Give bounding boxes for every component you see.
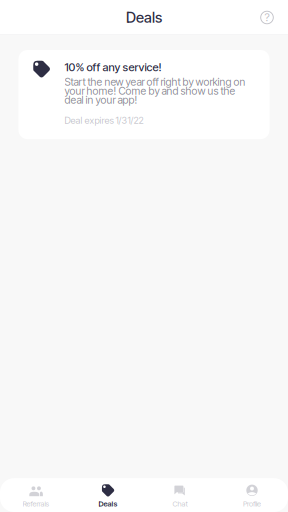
button[interactable]: Help <box>253 4 280 31</box>
button[interactable]: Deals <box>72 478 144 512</box>
button[interactable]: Profile <box>216 478 288 512</box>
button[interactable]: Chat <box>144 478 216 512</box>
button[interactable]: Referrals <box>0 478 72 512</box>
staticText: Chat <box>172 500 187 508</box>
staticText: Start the new year off right by working … <box>64 78 245 104</box>
staticText: Deals <box>98 500 117 508</box>
staticText: 10% off any service! <box>64 60 161 74</box>
staticText: Deals <box>126 9 162 26</box>
staticText: Profile <box>243 500 261 508</box>
button[interactable]: 10% off any service! <box>18 50 269 139</box>
staticText: Referrals <box>22 500 49 508</box>
staticText: Deal expires 1/31/22 <box>64 115 143 126</box>
staticText: ? <box>264 10 269 24</box>
